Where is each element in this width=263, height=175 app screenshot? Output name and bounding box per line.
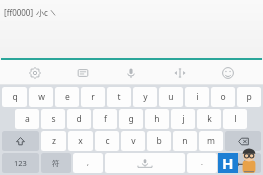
staticText: l [234, 113, 237, 125]
staticText: p [246, 91, 252, 103]
staticText: i [196, 91, 199, 103]
staticText: [ff0000] [4, 7, 34, 18]
button[interactable]: h [145, 109, 169, 129]
button[interactable]: z [41, 131, 66, 151]
staticText: v [131, 135, 136, 147]
button[interactable]: p [237, 87, 261, 107]
staticText: t [117, 91, 121, 103]
button[interactable]: q [2, 87, 27, 107]
staticText: e [65, 91, 70, 103]
staticText: m [207, 135, 215, 147]
staticText: k [207, 113, 212, 125]
staticText: n [182, 135, 188, 147]
button[interactable]: x [68, 131, 93, 151]
button[interactable]: b [147, 131, 171, 151]
button[interactable]: t [107, 87, 131, 107]
staticText: c [105, 135, 110, 147]
button[interactable]: Settings [22, 60, 48, 85]
button[interactable]: w [29, 87, 53, 107]
button[interactable]: j [171, 109, 195, 129]
button[interactable]: Move cursor [167, 60, 193, 85]
button[interactable]: s [41, 109, 65, 129]
staticText: H [222, 153, 234, 173]
button[interactable]: . [187, 153, 217, 173]
button[interactable]: f [93, 109, 117, 129]
button[interactable]: e [55, 87, 79, 107]
button[interactable]: Enter [219, 153, 261, 173]
staticText: g [128, 113, 134, 125]
staticText: a [25, 113, 30, 125]
button[interactable]: r [81, 87, 105, 107]
button[interactable]: Space [105, 153, 185, 173]
staticText: j [182, 113, 185, 125]
button[interactable]: c [95, 131, 119, 151]
button[interactable]: m [199, 131, 223, 151]
button[interactable]: v [121, 131, 145, 151]
button[interactable]: a [15, 109, 39, 129]
staticText: r [91, 91, 95, 103]
button[interactable]: Voice input [118, 60, 144, 85]
button[interactable]: o [211, 87, 235, 107]
staticText: x [78, 135, 83, 147]
button[interactable]: 符 [41, 153, 71, 173]
staticText: o [220, 91, 226, 103]
staticText: w [38, 91, 45, 103]
staticText: q [12, 91, 18, 103]
button[interactable]: n [173, 131, 197, 151]
button[interactable]: l [223, 109, 247, 129]
button[interactable]: Clipboard [70, 60, 96, 85]
staticText: u [168, 91, 174, 103]
staticText: 小c [36, 7, 48, 18]
staticText: y [143, 91, 148, 103]
staticText: 123 [14, 158, 27, 168]
staticText: . [201, 158, 203, 168]
staticText: h [154, 113, 160, 125]
button[interactable]: Backspace [225, 131, 261, 151]
staticText: d [76, 113, 82, 125]
button[interactable]: 123 [2, 153, 39, 173]
staticText: b [156, 135, 162, 147]
button[interactable]: Shift [2, 131, 39, 151]
staticText: 符 [52, 159, 60, 168]
button[interactable]: d [67, 109, 91, 129]
button[interactable]: , [73, 153, 103, 173]
staticText: z [52, 135, 56, 147]
button[interactable]: i [185, 87, 209, 107]
button[interactable]: y [133, 87, 157, 107]
button[interactable]: [ff0000] [0, 0, 263, 60]
button[interactable]: u [159, 87, 183, 107]
staticText: s [51, 113, 56, 125]
staticText: f [104, 113, 107, 125]
staticText: , [87, 158, 89, 168]
button[interactable]: g [119, 109, 143, 129]
button[interactable]: k [197, 109, 221, 129]
button[interactable]: Emoji [215, 60, 241, 85]
